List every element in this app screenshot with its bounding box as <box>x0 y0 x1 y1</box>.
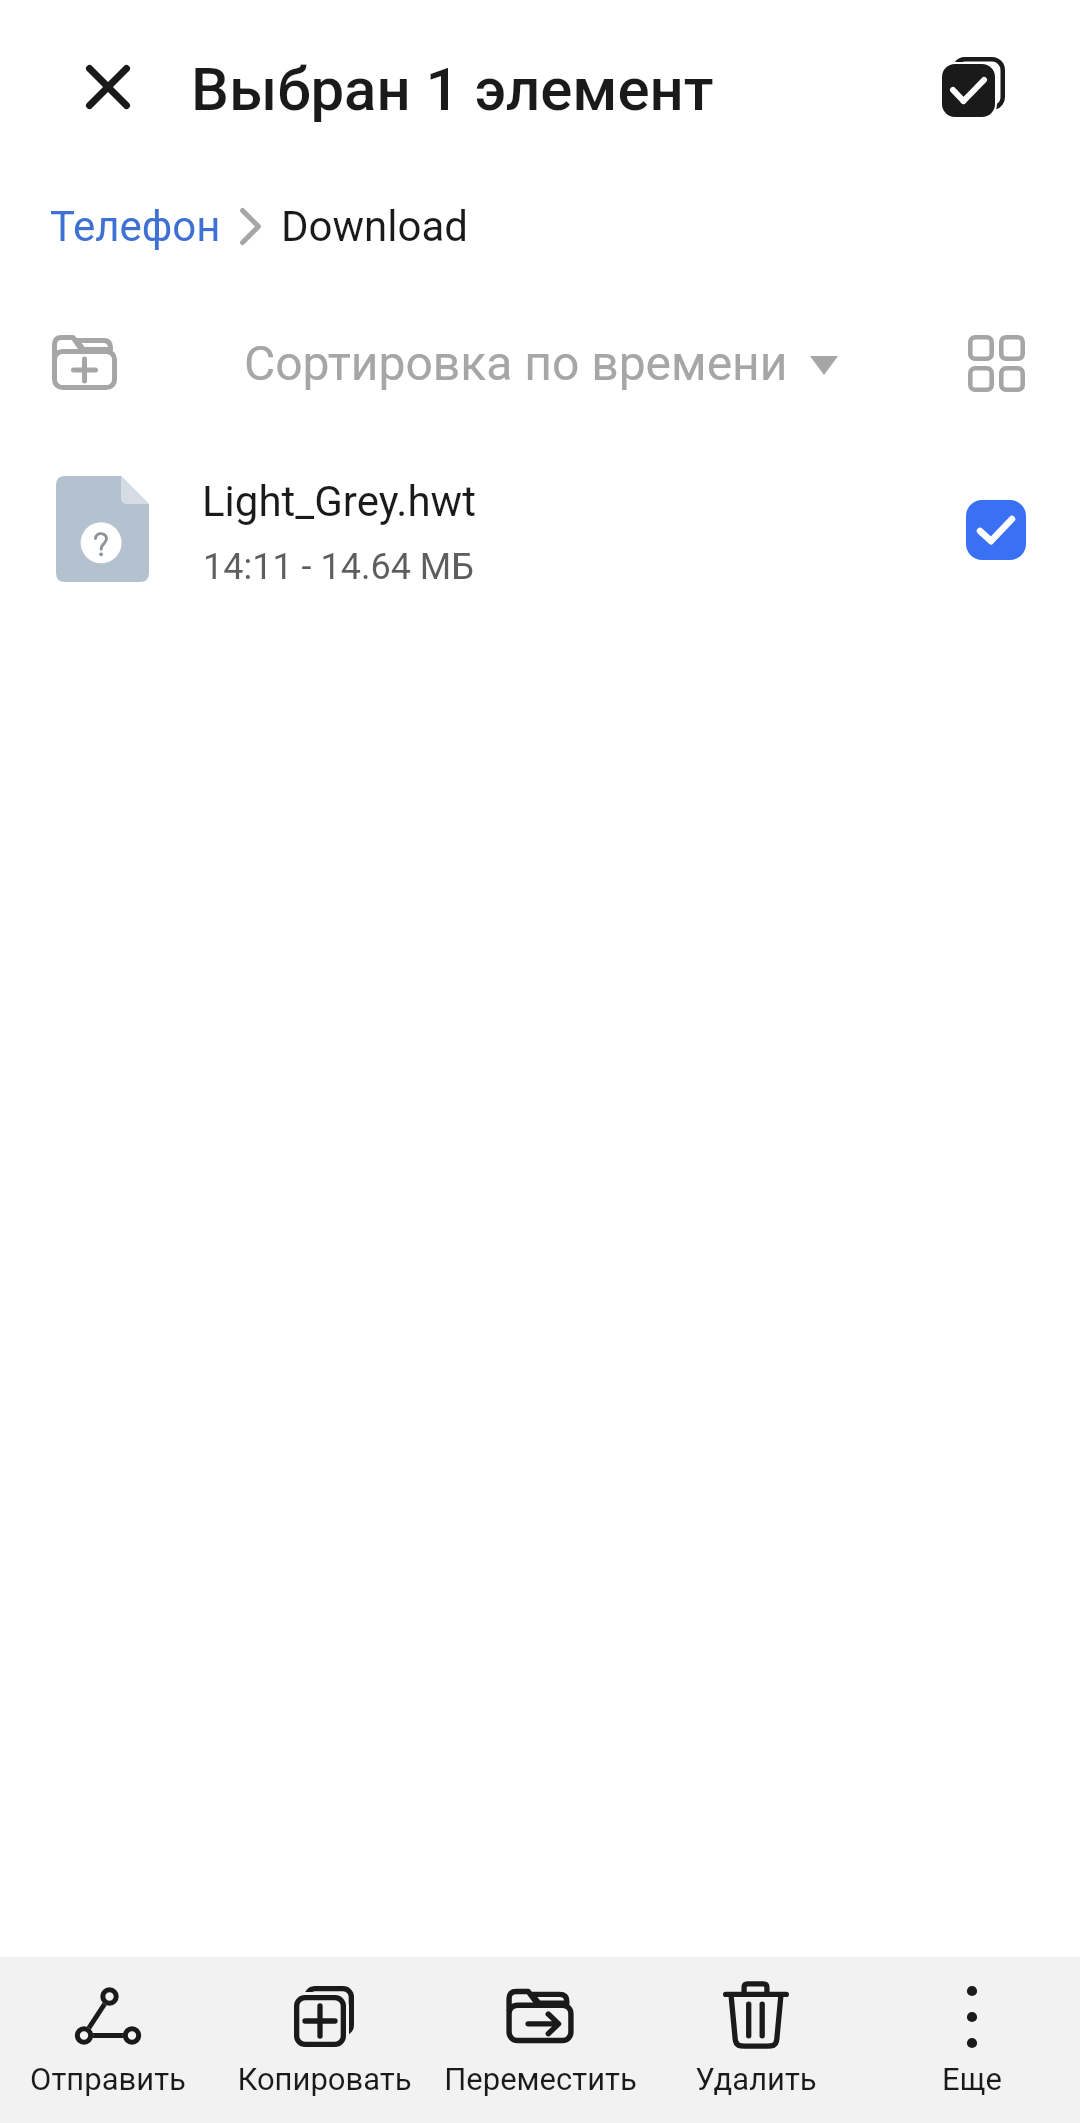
staticText: Выбран 1 элемент <box>191 54 714 124</box>
button[interactable]: Share <box>0 1957 216 2123</box>
button[interactable]: New folder <box>38 316 130 408</box>
button[interactable]: Download <box>281 202 468 251</box>
staticText: 14:11 - 14.64 МБ <box>203 546 474 588</box>
staticText: Еще <box>942 2061 1002 2097</box>
button[interactable]: Телефон <box>50 202 221 251</box>
staticText: Удалить <box>695 2061 817 2097</box>
button[interactable]: Move <box>432 1957 648 2123</box>
button[interactable]: Light_Grey.hwt <box>0 440 1080 618</box>
button[interactable]: Select all <box>918 33 1026 141</box>
button[interactable]: More options <box>864 1957 1080 2123</box>
button[interactable]: Switch to grid view <box>950 317 1042 409</box>
button[interactable]: Сортировка по времени <box>230 320 850 410</box>
button[interactable]: Delete <box>648 1957 864 2123</box>
staticText: Копировать <box>237 2061 412 2097</box>
button[interactable]: Item selected <box>966 500 1026 560</box>
staticText: Отправить <box>30 2061 186 2097</box>
staticText: Сортировка по времени <box>244 335 788 391</box>
staticText: Light_Grey.hwt <box>202 477 476 526</box>
button[interactable]: Copy <box>216 1957 432 2123</box>
staticText: Download <box>281 202 468 251</box>
button[interactable]: Close selection <box>54 33 162 141</box>
staticText: Телефон <box>50 202 221 251</box>
staticText: Переместить <box>444 2061 637 2097</box>
